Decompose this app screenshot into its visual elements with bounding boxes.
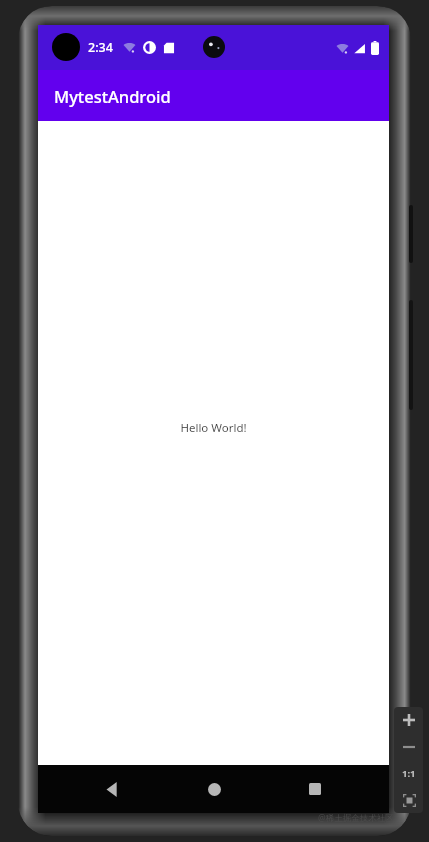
button[interactable]: Actual size	[396, 760, 422, 786]
staticText: MytestAndroid	[54, 85, 171, 107]
button[interactable]: Recent apps	[287, 765, 343, 813]
staticText: Hello World!	[180, 420, 247, 436]
staticText: @稀土掘金技术社区	[318, 812, 394, 824]
staticText: 2:34	[88, 39, 113, 56]
button[interactable]: MytestAndroid	[38, 70, 389, 121]
button[interactable]: Home	[186, 765, 242, 813]
button[interactable]: Fit to screen	[396, 787, 422, 813]
staticText: 1:1	[402, 767, 416, 780]
button[interactable]: Zoom in	[396, 707, 422, 733]
button[interactable]: Zoom out	[396, 734, 422, 760]
button[interactable]: Back	[84, 765, 140, 813]
